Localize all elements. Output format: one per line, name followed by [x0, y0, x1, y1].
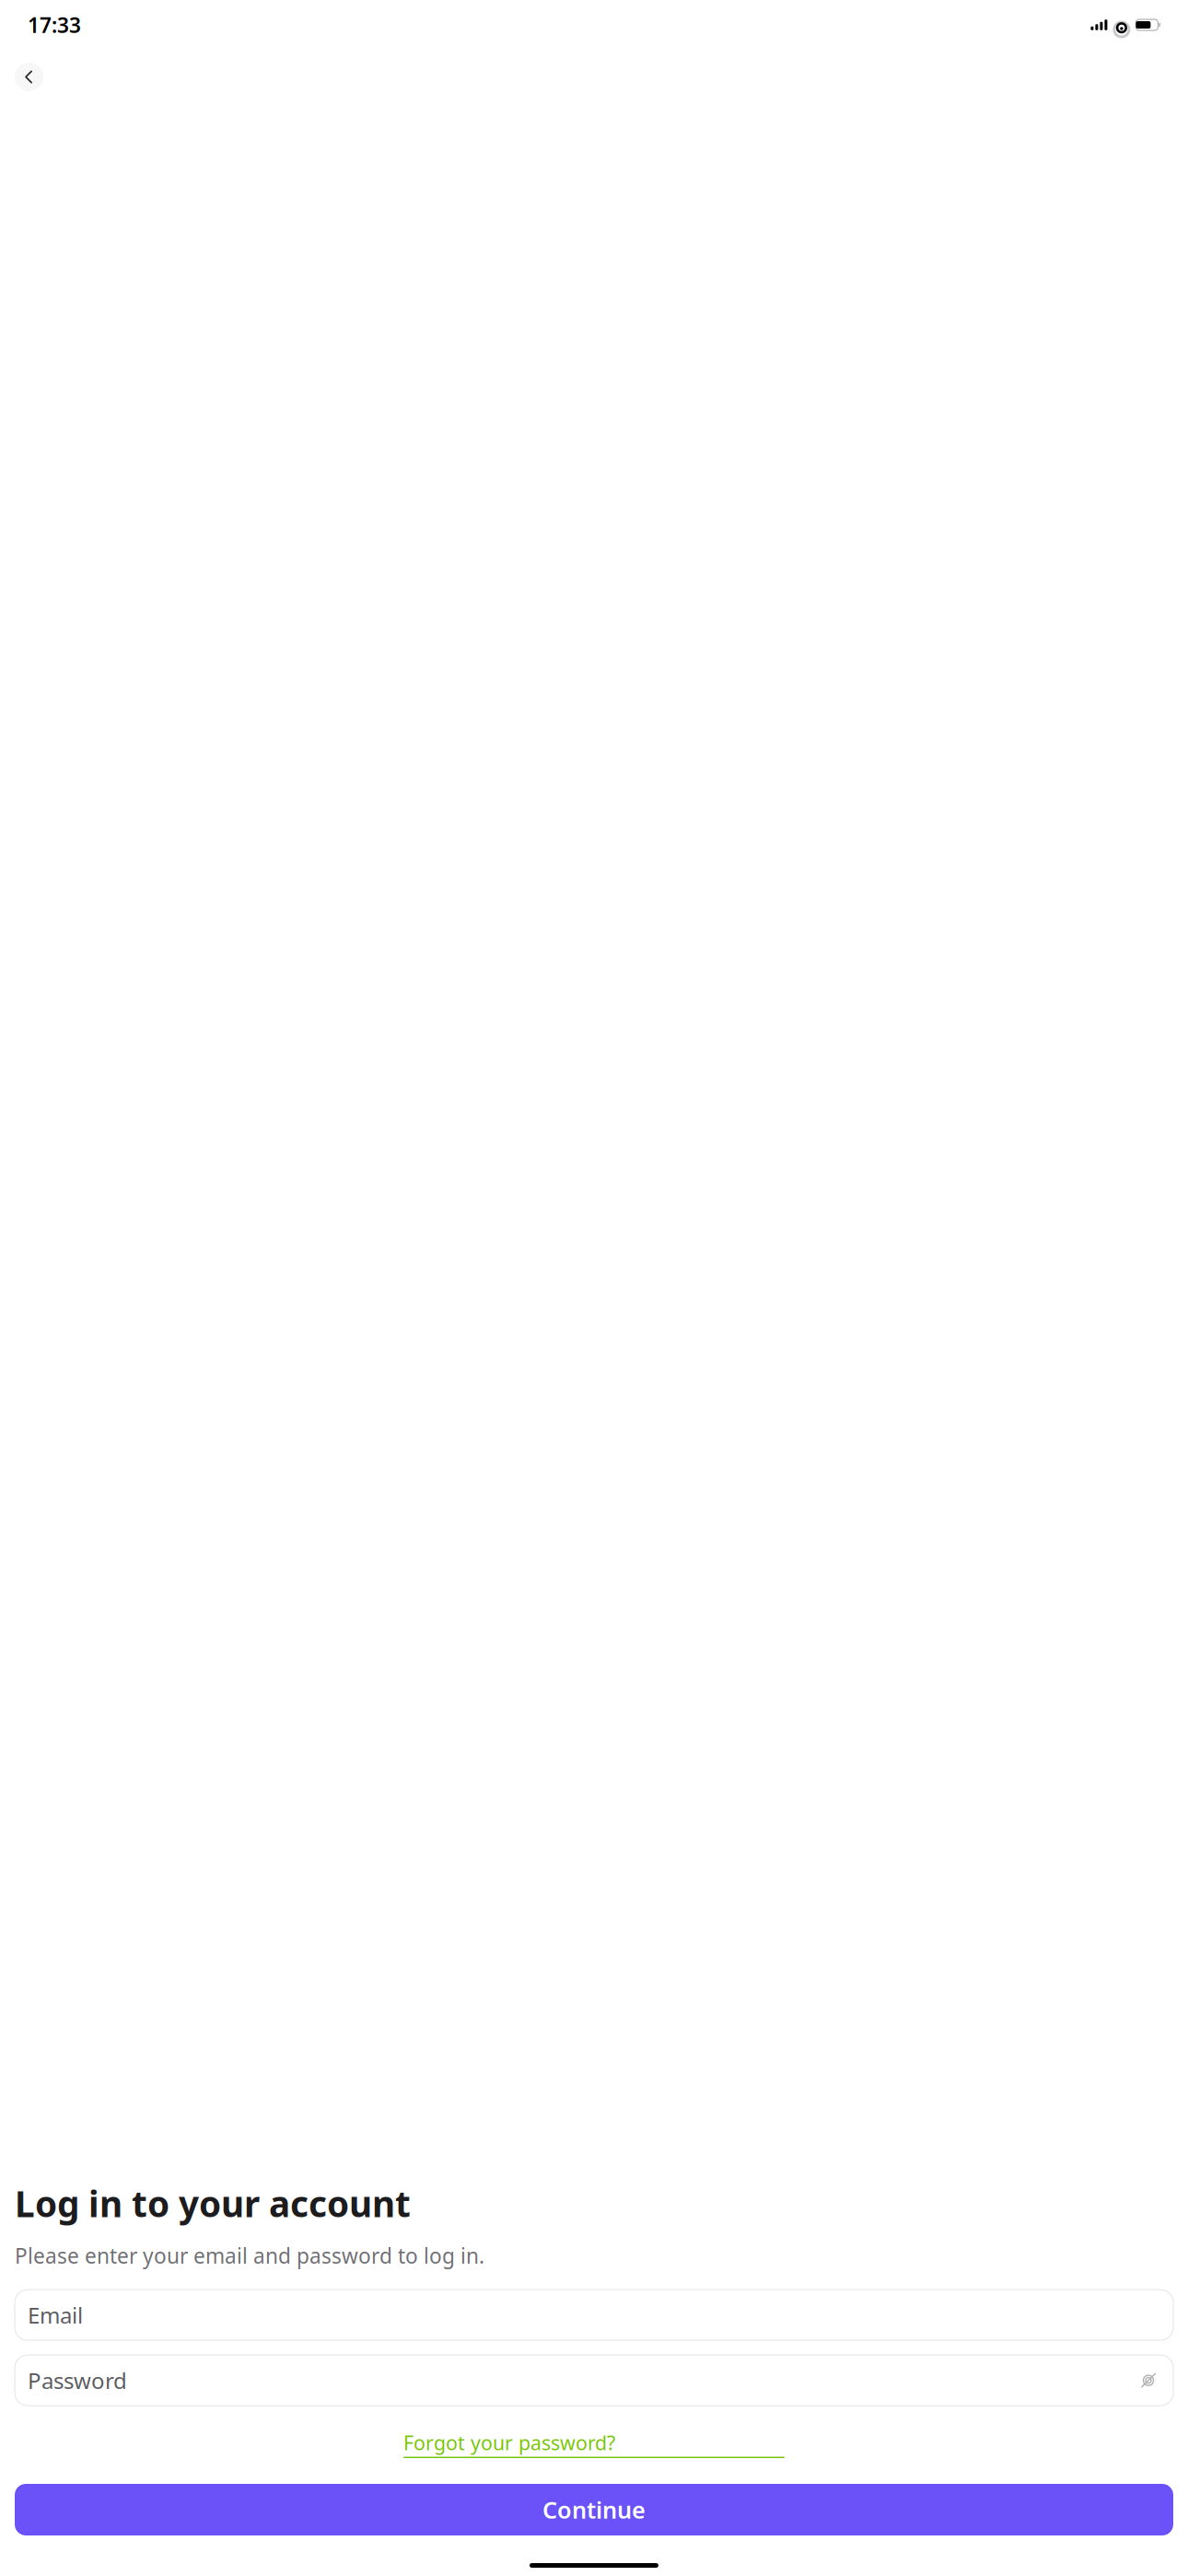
button[interactable]: Forgot your password?: [403, 2424, 785, 2464]
staticText: 17:33: [28, 11, 81, 39]
staticText: Please enter your email and password to …: [15, 2242, 484, 2269]
staticText: Continue: [542, 2494, 646, 2525]
staticText: Log in to your account: [15, 2180, 411, 2227]
button[interactable]: Back: [15, 63, 43, 91]
button[interactable]: Show password: [1136, 2368, 1160, 2392]
staticText: Password: [28, 2366, 127, 2395]
staticText: Email: [28, 2300, 83, 2330]
button[interactable]: Continue: [15, 2484, 1173, 2535]
staticText: Forgot your password?: [403, 2430, 615, 2456]
